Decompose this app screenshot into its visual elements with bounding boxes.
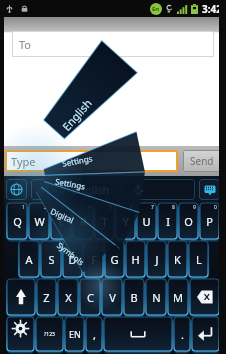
staticText: En (152, 5, 160, 13)
button[interactable]: A (19, 241, 39, 277)
staticText: M (173, 290, 183, 305)
button[interactable]: key (190, 279, 219, 315)
staticText: Type (11, 154, 36, 169)
staticText: EN (69, 328, 81, 340)
button[interactable]: Keyboard settings (199, 179, 220, 200)
button[interactable]: ?123 (36, 317, 63, 351)
staticText: English (59, 95, 95, 134)
staticText: 0 (214, 204, 217, 211)
button[interactable]: U (137, 203, 156, 239)
staticText: H (131, 252, 140, 267)
button[interactable]: L (189, 241, 208, 277)
staticText: 2 (44, 204, 47, 211)
staticText: 6 (130, 204, 133, 211)
staticText: Z (43, 290, 50, 305)
staticText: , (93, 327, 96, 342)
staticText: 4 (88, 204, 91, 211)
button[interactable]: Q (7, 203, 27, 239)
staticText: A (25, 252, 33, 267)
button[interactable]: key (104, 317, 172, 351)
button[interactable]: Change language (6, 179, 27, 200)
button[interactable]: English (31, 179, 195, 200)
staticText: . (181, 327, 184, 342)
staticText: ?123 (44, 331, 55, 338)
button[interactable]: M (168, 279, 188, 315)
button[interactable]: N (146, 279, 166, 315)
staticText: V (109, 290, 116, 305)
staticText: X (65, 290, 72, 305)
staticText: N (152, 290, 161, 305)
staticText: E (58, 214, 65, 229)
staticText: B (130, 290, 138, 305)
button[interactable]: I (158, 203, 177, 239)
staticText: Q (13, 214, 22, 229)
staticText: Symbols (55, 239, 87, 268)
staticText: 8 (172, 204, 175, 211)
staticText: L (196, 252, 202, 267)
button[interactable]: J (147, 241, 166, 277)
button[interactable]: E (51, 203, 71, 239)
button[interactable]: EN (65, 317, 84, 351)
staticText: Digital (49, 205, 76, 226)
button[interactable]: Y (116, 203, 135, 239)
staticText: Settings (54, 175, 87, 192)
staticText: J (155, 252, 159, 267)
staticText: F (91, 252, 97, 267)
button[interactable]: V (102, 279, 122, 315)
button[interactable]: T (95, 203, 114, 239)
button[interactable]: P (200, 203, 219, 239)
staticText: O (184, 214, 193, 229)
staticText: T (101, 214, 108, 229)
button[interactable]: To (12, 31, 214, 57)
staticText: Y (122, 214, 129, 229)
button[interactable]: C (80, 279, 100, 315)
button[interactable]: Send (183, 150, 221, 172)
button[interactable]: W (29, 203, 49, 239)
staticText: Settings (61, 152, 94, 169)
button[interactable]: . (174, 317, 190, 351)
button[interactable]: G (105, 241, 124, 277)
button[interactable]: F (84, 241, 103, 277)
button[interactable]: S (41, 241, 61, 277)
button[interactable]: O (179, 203, 198, 239)
button[interactable]: B (124, 279, 144, 315)
button[interactable]: H (126, 241, 145, 277)
staticText: English (72, 182, 110, 197)
staticText: I (166, 214, 170, 229)
staticText: 5 (109, 204, 112, 211)
staticText: 9 (193, 204, 196, 211)
button[interactable]: , (86, 317, 102, 351)
staticText: 3:42 (202, 2, 222, 16)
staticText: 1 (22, 204, 25, 211)
staticText: W (34, 214, 45, 229)
button[interactable]: K (168, 241, 187, 277)
staticText: D (68, 252, 77, 267)
staticText: S (48, 252, 55, 267)
staticText: P (206, 214, 213, 229)
staticText: Send (190, 154, 214, 168)
button[interactable]: key (192, 317, 219, 351)
button[interactable]: key (7, 279, 35, 315)
button[interactable]: R (73, 203, 93, 239)
staticText: R (80, 214, 87, 229)
staticText: U (142, 214, 151, 229)
staticText: 7 (151, 204, 154, 211)
staticText: To (19, 37, 32, 52)
button[interactable]: D (63, 241, 82, 277)
button[interactable]: Type (5, 150, 178, 172)
button[interactable]: key (7, 317, 34, 351)
staticText: 3 (66, 204, 69, 211)
button[interactable]: X (58, 279, 78, 315)
other: Voice input (133, 184, 144, 195)
staticText: C (87, 290, 94, 305)
staticText: K (174, 252, 181, 267)
button[interactable]: Z (37, 279, 56, 315)
staticText: G (110, 252, 119, 267)
